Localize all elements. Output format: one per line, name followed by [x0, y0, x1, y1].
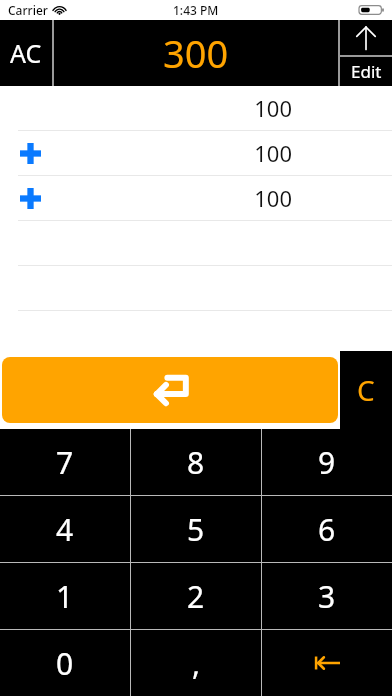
button[interactable]: Add: [0, 176, 392, 220]
staticText: 100: [254, 138, 292, 168]
staticText: C: [357, 371, 375, 409]
other: Add: [20, 143, 41, 164]
button[interactable]: 300: [54, 20, 338, 86]
button[interactable]: Backspace: [262, 630, 392, 696]
staticText: 1: [56, 576, 74, 617]
button[interactable]: 8: [131, 429, 261, 495]
button[interactable]: 5: [131, 496, 261, 562]
staticText: Carrier: [8, 2, 48, 18]
staticText: 7: [56, 442, 74, 483]
staticText: 100: [254, 93, 292, 123]
staticText: 8: [187, 442, 205, 483]
staticText: 1:43 PM: [173, 2, 219, 18]
staticText: 6: [318, 509, 336, 550]
button[interactable]: Edit: [340, 57, 392, 86]
button[interactable]: AC: [0, 20, 52, 86]
staticText: 4: [56, 509, 74, 550]
staticText: 5: [187, 509, 205, 550]
staticText: Edit: [351, 60, 382, 83]
button[interactable]: ,: [131, 630, 261, 696]
button[interactable]: 4: [0, 496, 130, 562]
button[interactable]: C: [340, 351, 392, 429]
button[interactable]: 2: [131, 563, 261, 629]
other: Add: [20, 188, 41, 209]
button[interactable]: 9: [262, 429, 392, 495]
staticText: AC: [10, 36, 42, 70]
staticText: ,: [192, 643, 201, 684]
staticText: 300: [163, 27, 229, 79]
staticText: 100: [254, 183, 292, 213]
button[interactable]: 7: [0, 429, 130, 495]
button[interactable]: Enter: [2, 357, 338, 423]
staticText: 2: [187, 576, 205, 617]
button[interactable]: 100: [0, 86, 392, 130]
button[interactable]: Add: [0, 131, 392, 175]
button[interactable]: 6: [262, 496, 392, 562]
button[interactable]: Move up: [340, 20, 392, 55]
button[interactable]: 3: [262, 563, 392, 629]
staticText: 9: [318, 442, 336, 483]
button[interactable]: 0: [0, 630, 130, 696]
staticText: 0: [56, 643, 74, 684]
staticText: 3: [318, 576, 336, 617]
button[interactable]: 1: [0, 563, 130, 629]
